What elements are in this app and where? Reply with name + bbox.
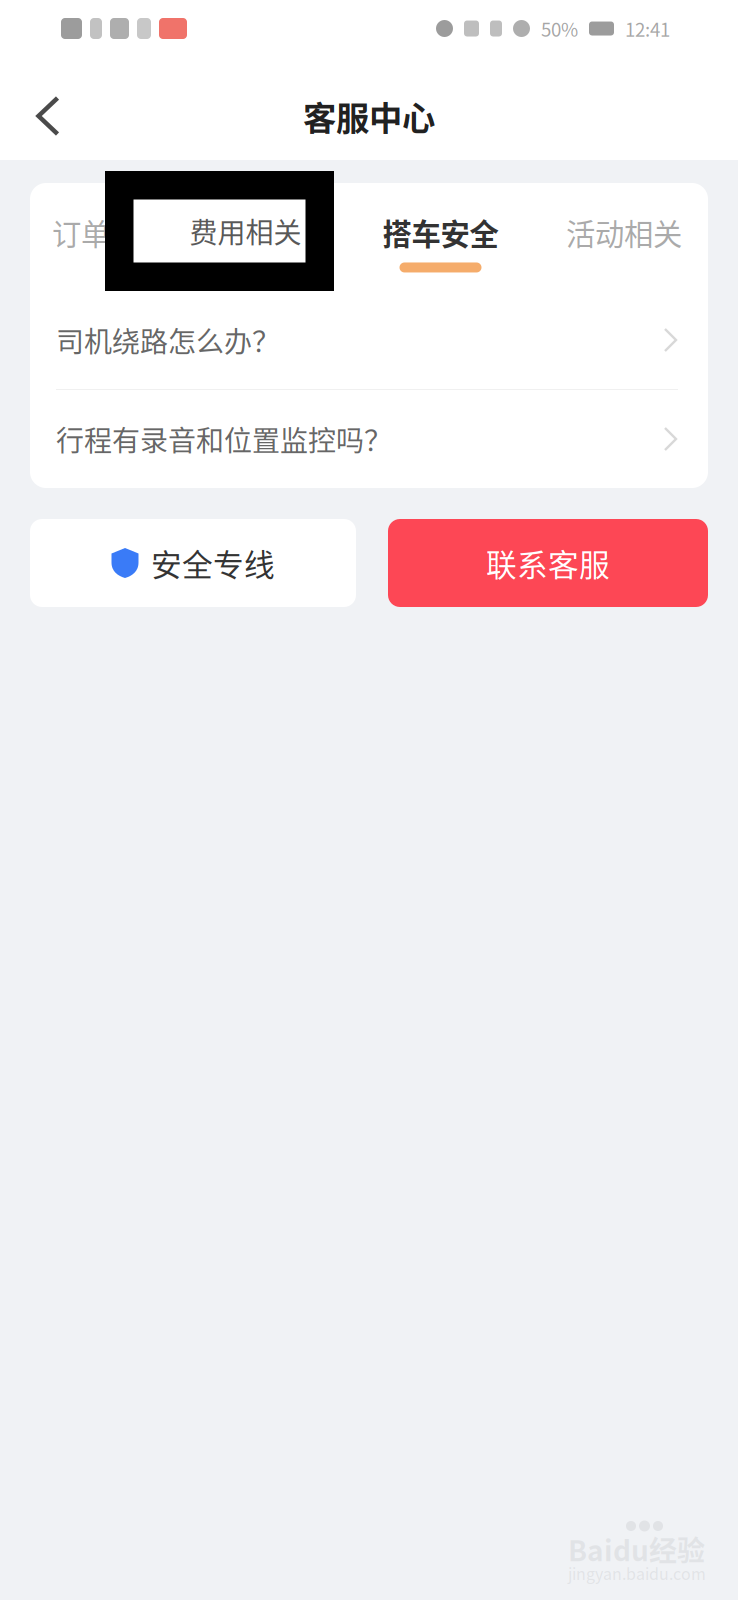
button[interactable]: 搭车安全: [343, 183, 538, 291]
staticText: 司机绕路怎么办？: [56, 320, 280, 360]
button[interactable]: 安全专线: [30, 519, 356, 607]
button[interactable]: 行程有录音和位置监控吗？: [28, 390, 706, 488]
button[interactable]: 费用相关: [188, 183, 343, 291]
staticText: 行程有录音和位置监控吗？: [56, 419, 392, 459]
button[interactable]: 返回: [0, 72, 96, 160]
staticText: 联系客服: [486, 541, 610, 585]
staticText: jingyan.baidu.com: [568, 1561, 706, 1585]
button[interactable]: 联系客服: [388, 519, 708, 607]
staticText: 费用相关: [207, 211, 323, 253]
staticText: 12:41: [625, 15, 670, 42]
button[interactable]: 活动相关: [538, 183, 710, 291]
staticText: 客服中心: [303, 92, 435, 140]
staticText: 搭车安全: [382, 211, 498, 253]
staticText: 费用相关: [189, 211, 301, 251]
staticText: Baidu经验: [568, 1529, 705, 1569]
staticText: 活动相关: [566, 211, 682, 253]
staticText: 订单相关: [52, 211, 168, 253]
staticText: 50%: [541, 15, 578, 42]
button[interactable]: 司机绕路怎么办？: [28, 291, 706, 389]
button[interactable]: 订单相关: [32, 183, 188, 291]
staticText: 安全专线: [151, 541, 275, 585]
